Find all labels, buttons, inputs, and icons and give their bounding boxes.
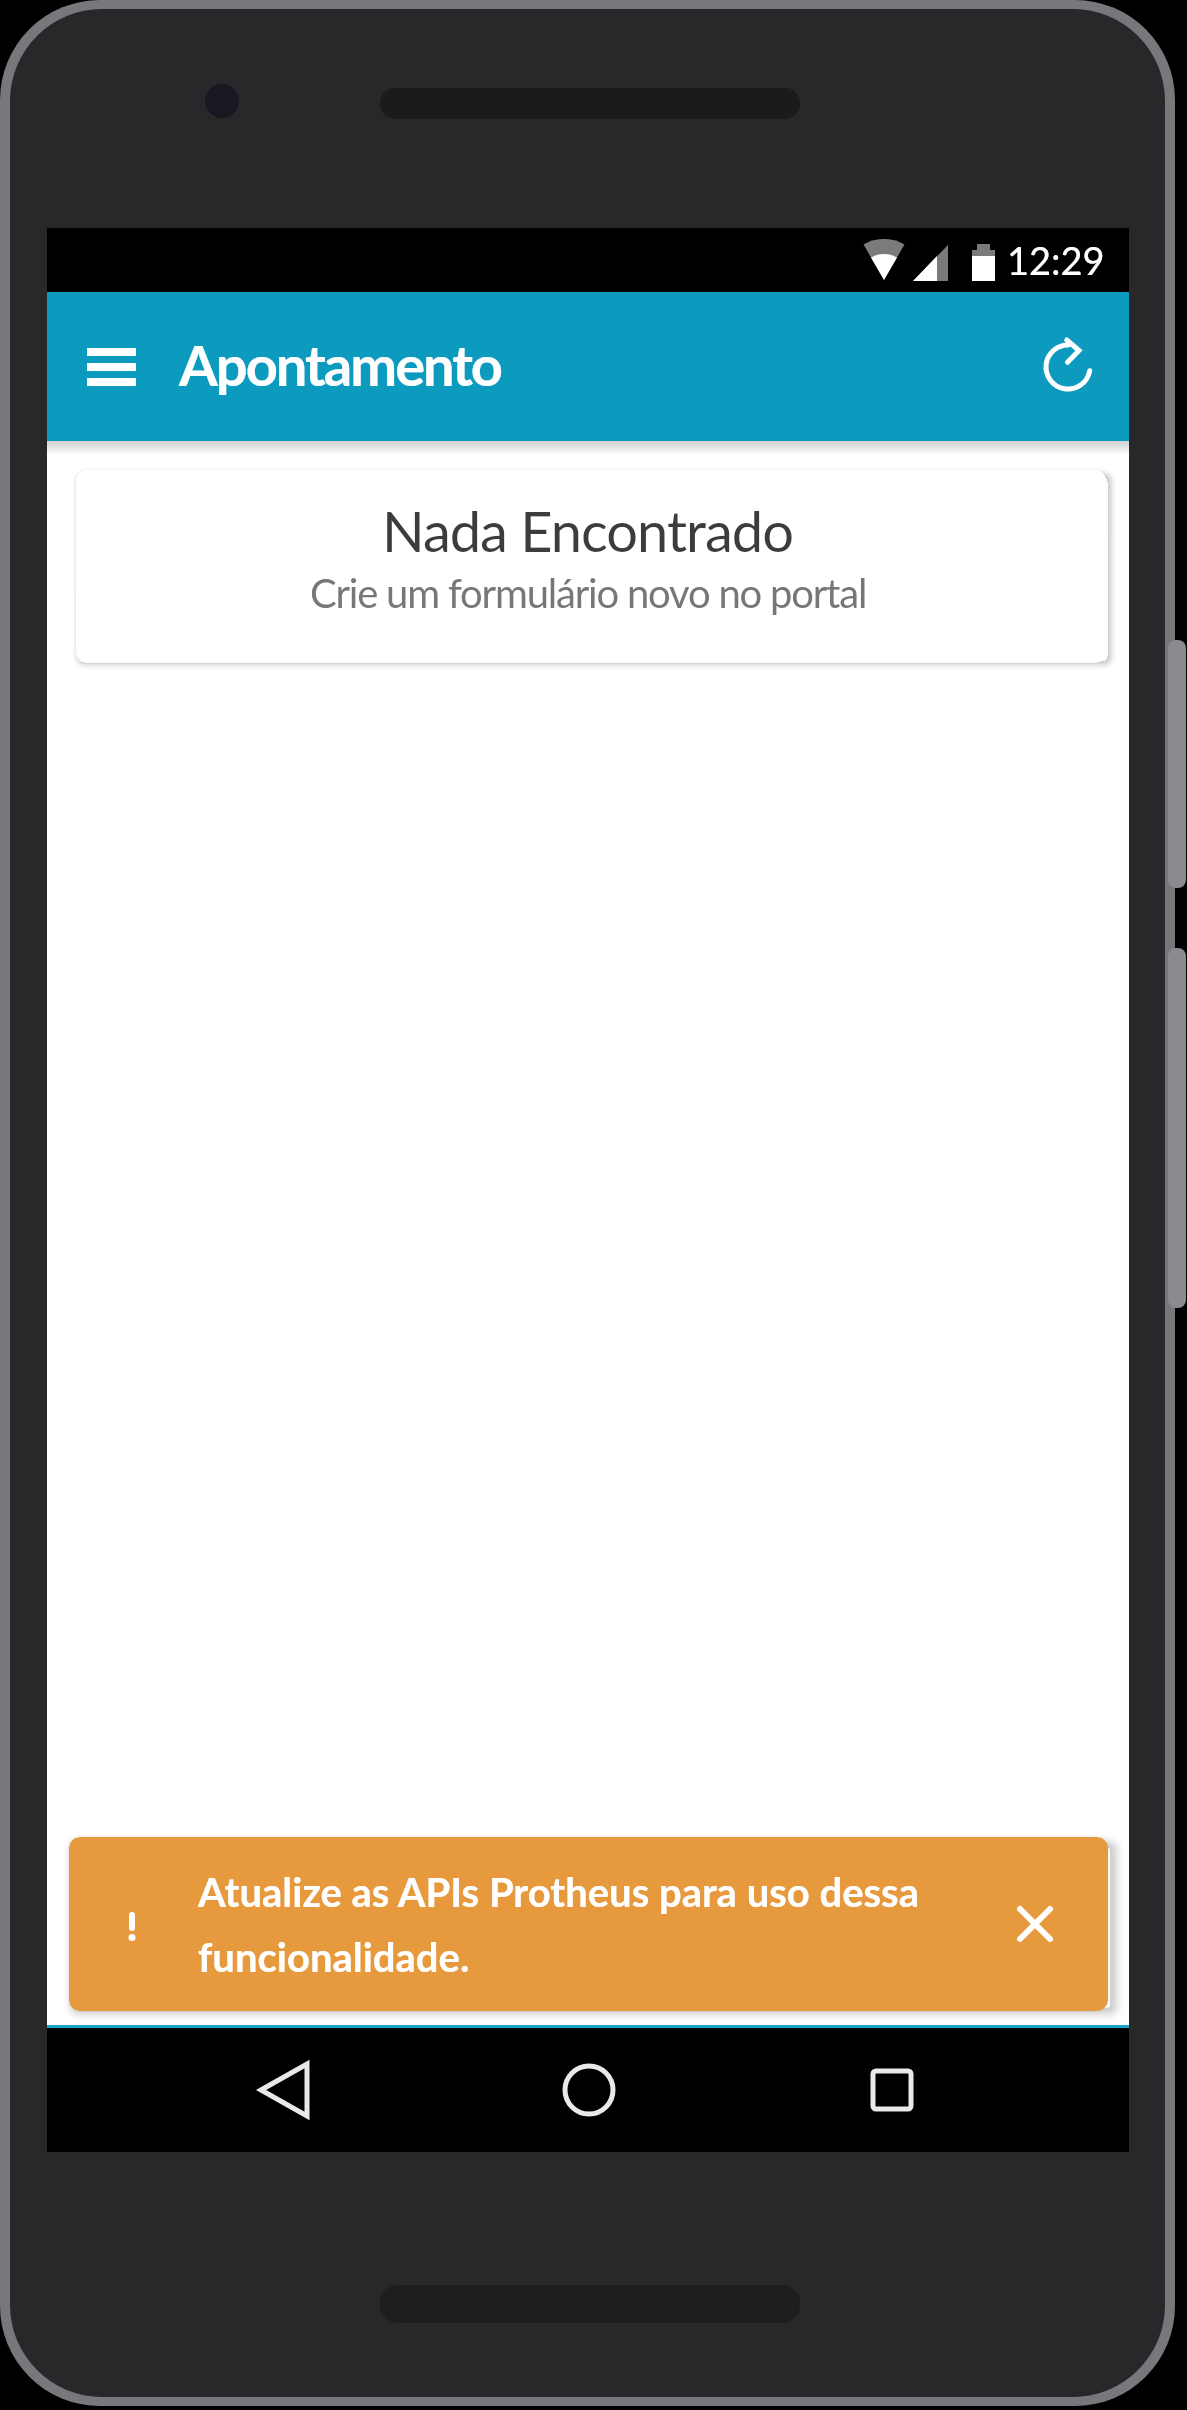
button[interactable] xyxy=(1005,1894,1065,1954)
button[interactable] xyxy=(204,2028,364,2152)
staticText: Crie um formulário novo no portal xyxy=(310,569,867,617)
button[interactable] xyxy=(1033,332,1103,402)
button[interactable]: Nada Encontrado xyxy=(76,470,1106,663)
staticText: 12:29 xyxy=(1007,237,1105,283)
staticText: Apontamento xyxy=(179,331,502,398)
staticText: Atualize as APIs Protheus para uso dessa xyxy=(198,1868,919,1916)
button[interactable]: Atualize as APIs Protheus para uso dessa xyxy=(69,1837,1108,2011)
staticText: funcionalidade. xyxy=(198,1933,470,1981)
button[interactable] xyxy=(509,2028,669,2152)
button[interactable] xyxy=(71,327,151,407)
staticText: Nada Encontrado xyxy=(382,497,793,564)
button[interactable] xyxy=(812,2028,972,2152)
